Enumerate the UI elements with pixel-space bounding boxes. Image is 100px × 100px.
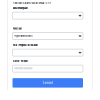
staticText: Pekerjaan [12, 27, 21, 30]
staticText: Suku/Kebangsaan [12, 7, 27, 9]
button[interactable]: Suku/Kebangsaan [12, 12, 83, 19]
staticText: Pegawai BUMN/BUMD [14, 35, 32, 37]
staticText: Pastikan datamu sudah sesuai KTP [12, 2, 51, 5]
staticText: Nomor Telepon [12, 60, 27, 62]
staticText: Contoh 081200000000 [14, 67, 32, 70]
staticText: Total Penghasilan bulanan [12, 44, 37, 46]
button[interactable]: Nomor Telepon, Contoh 081200000000 [12, 65, 83, 72]
button[interactable]: Lanjut [12, 78, 83, 88]
staticText: Lanjut [43, 81, 53, 85]
button[interactable]: Pekerjaan, Pegawai BUMN/BUMD [12, 32, 83, 39]
button[interactable]: Total Penghasilan bulanan [12, 49, 83, 56]
